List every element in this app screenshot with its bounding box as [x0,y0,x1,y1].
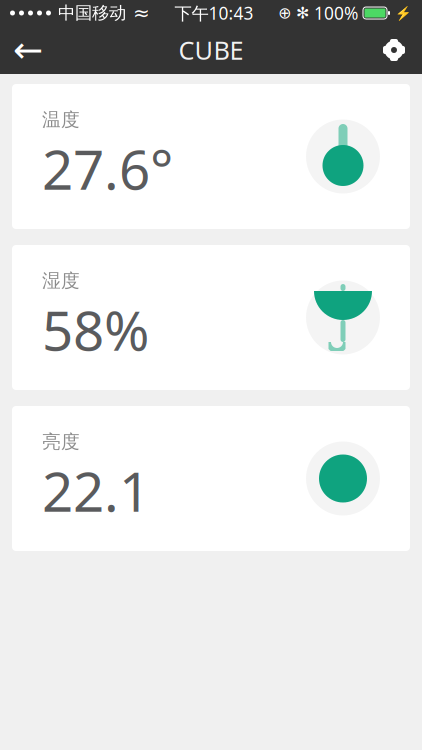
staticText: 58% [42,293,149,366]
staticText: 亮度 [42,430,80,453]
staticText: 100% [314,1,358,24]
staticText: 22.1 [42,454,150,527]
staticText: ⊕ [278,4,291,22]
staticText: 中国移动 [58,2,126,24]
staticText: ← [13,30,43,70]
button[interactable]: Settings [366,26,422,74]
button[interactable]: Back [0,26,56,74]
button[interactable]: 温度 [12,84,410,229]
staticText: 湿度 [42,269,80,292]
staticText: ✻ [296,4,309,22]
staticText: 27.6° [42,132,173,205]
staticText: 下午10:43 [174,1,253,24]
staticText: ⚡ [395,5,412,21]
staticText: CUBE [178,33,243,67]
staticText: ≈ [133,2,150,24]
staticText: 温度 [42,108,80,131]
button[interactable]: 湿度 [12,245,410,390]
button[interactable]: 亮度 [12,406,410,551]
